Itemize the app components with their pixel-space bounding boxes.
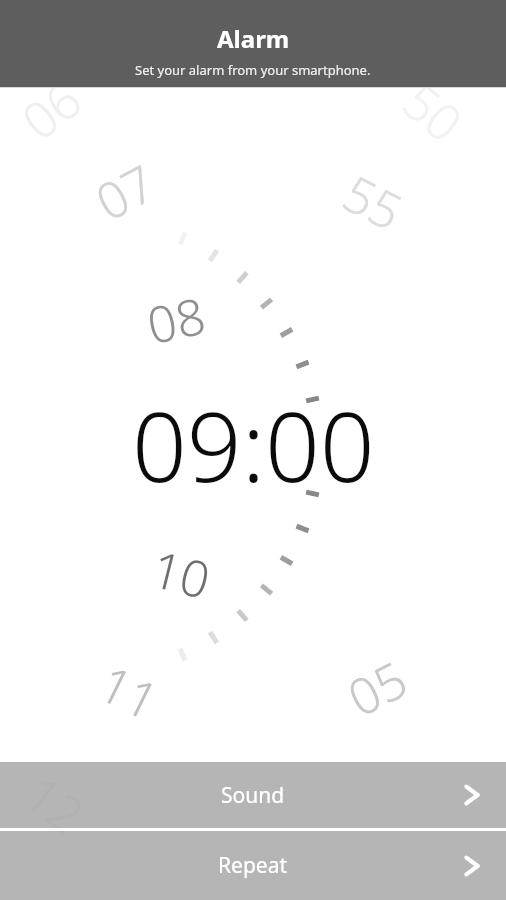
staticText: 06 <box>7 65 95 155</box>
staticText: Alarm <box>217 22 290 55</box>
staticText: Sound <box>221 781 285 810</box>
staticText: 09:00 <box>132 379 375 510</box>
staticText: 08 <box>141 281 211 359</box>
staticText: Repeat <box>218 851 288 880</box>
staticText: 55 <box>332 158 414 245</box>
staticText: 50 <box>389 67 477 157</box>
staticText: Set your alarm from your smartphone. <box>135 61 371 79</box>
button[interactable]: Sound <box>0 762 506 828</box>
staticText: 11 <box>88 649 170 735</box>
staticText: 12 <box>11 759 99 849</box>
staticText: 10 <box>145 534 217 614</box>
staticText: 07 <box>83 148 166 236</box>
button[interactable]: Repeat <box>0 831 506 900</box>
staticText: 05 <box>336 644 418 731</box>
